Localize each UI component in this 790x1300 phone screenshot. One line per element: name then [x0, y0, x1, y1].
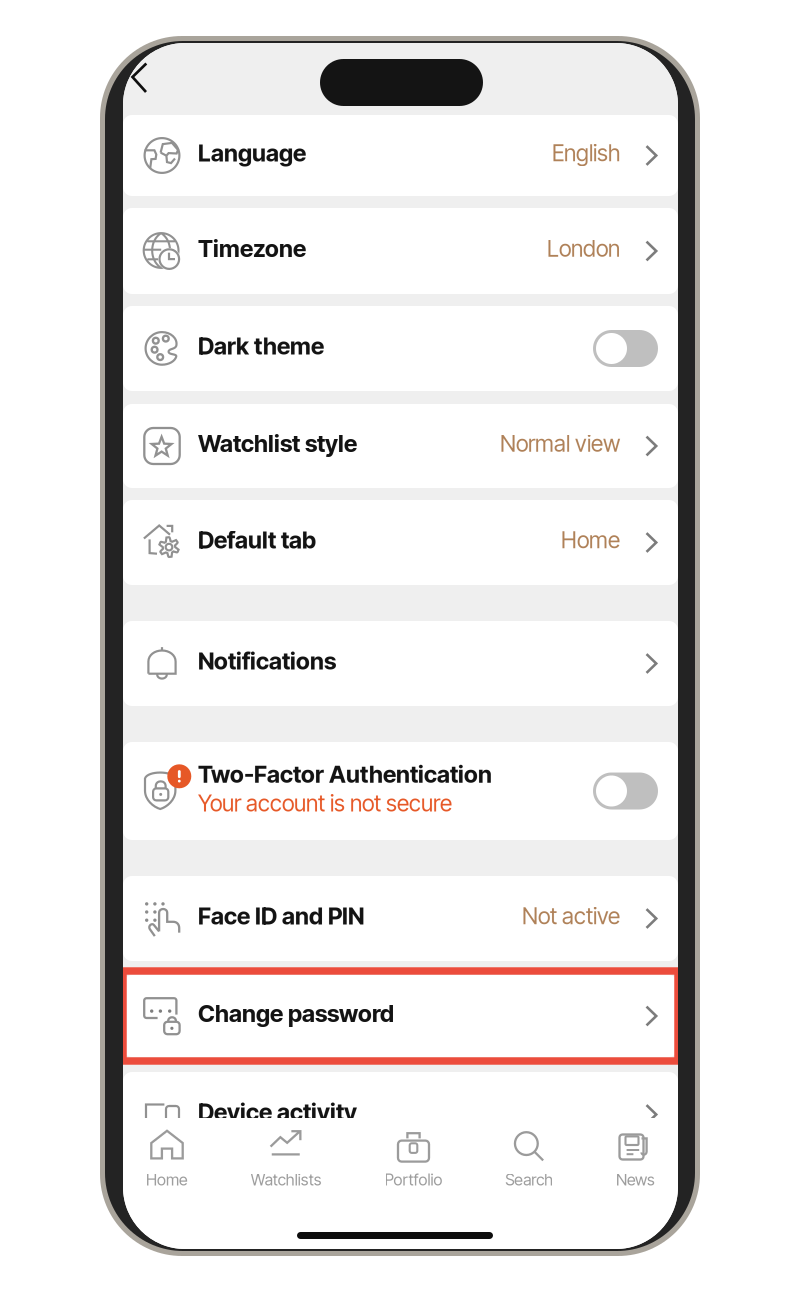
button[interactable]: Watchlists — [251, 1129, 322, 1189]
button[interactable]: News — [616, 1129, 655, 1189]
staticText: Watchlists — [251, 1170, 322, 1189]
staticText: Not active — [522, 902, 620, 930]
button[interactable]: Notifications — [123, 621, 678, 706]
button[interactable]: Timezone — [123, 208, 678, 294]
staticText: News — [616, 1170, 655, 1189]
staticText: Search — [505, 1170, 553, 1189]
staticText: Home — [146, 1170, 188, 1189]
button[interactable]: Change password — [123, 975, 678, 1057]
staticText: Device activity — [198, 1098, 357, 1126]
staticText: Two-Factor Authentication — [198, 760, 492, 788]
staticText: Watchlist style — [198, 429, 357, 458]
staticText: Face ID and PIN — [198, 902, 364, 930]
staticText: Default tab — [198, 526, 316, 554]
staticText: London — [547, 235, 620, 262]
staticText: Timezone — [198, 234, 306, 263]
button[interactable]: Device activity — [123, 1072, 678, 1157]
staticText: Language — [198, 139, 306, 167]
staticText: Portfolio — [384, 1170, 442, 1189]
button[interactable]: Two-Factor Authentication — [123, 742, 678, 840]
button[interactable]: Default tab — [123, 500, 678, 585]
staticText: Your account is not secure — [198, 789, 452, 817]
staticText: Change password — [198, 999, 394, 1028]
staticText: Home — [561, 526, 620, 554]
button[interactable]: Home — [146, 1129, 188, 1189]
staticText: Notifications — [198, 647, 336, 675]
button[interactable]: Watchlist style — [123, 404, 678, 488]
staticText: Dark theme — [198, 332, 324, 360]
button[interactable]: Search — [505, 1129, 553, 1189]
button[interactable]: Face ID and PIN — [123, 876, 678, 961]
staticText: Normal view — [500, 430, 620, 457]
button[interactable]: Dark theme — [123, 306, 678, 391]
staticText: English — [552, 139, 620, 167]
button[interactable]: Language — [123, 115, 678, 196]
button[interactable]: Portfolio — [384, 1129, 442, 1189]
